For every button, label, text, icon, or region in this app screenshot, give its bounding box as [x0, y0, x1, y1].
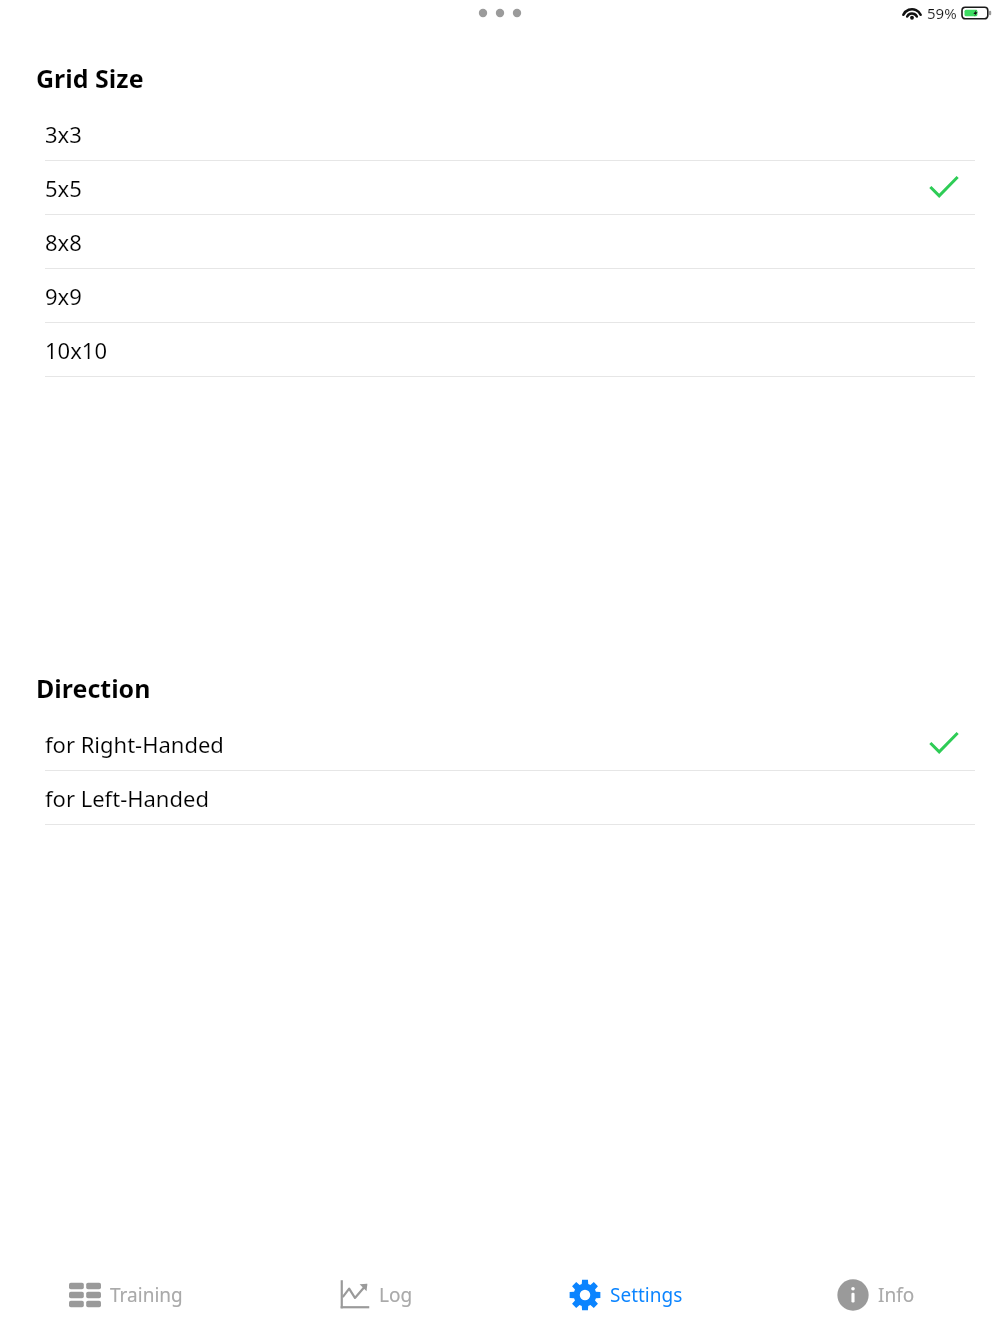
button[interactable]: 9x9	[0, 269, 1000, 323]
staticText: Direction	[36, 671, 151, 705]
staticText: 59%	[927, 3, 957, 23]
staticText: Grid Size	[36, 61, 144, 95]
staticText: Settings	[610, 1282, 683, 1308]
staticText: 10x10	[45, 335, 107, 365]
staticText: 3x3	[45, 119, 82, 149]
staticText: 9x9	[45, 281, 82, 311]
button[interactable]: 8x8	[0, 215, 1000, 269]
button[interactable]: Log	[250, 1255, 500, 1334]
staticText: for Left-Handed	[45, 783, 209, 813]
staticText: for Right-Handed	[45, 729, 224, 759]
staticText: 5x5	[45, 173, 82, 203]
button[interactable]: 3x3	[0, 107, 1000, 161]
button[interactable]: Info	[750, 1255, 1000, 1334]
button[interactable]: for Left-Handed	[0, 771, 1000, 825]
staticText: Info	[878, 1282, 915, 1308]
button[interactable]: 5x5	[0, 161, 1000, 215]
button[interactable]: 10x10	[0, 323, 1000, 377]
staticText: Log	[379, 1282, 413, 1308]
staticText: 8x8	[45, 227, 82, 257]
button[interactable]: Training	[0, 1255, 250, 1334]
staticText: Training	[110, 1282, 183, 1308]
button[interactable]: for Right-Handed	[0, 717, 1000, 771]
button[interactable]: Settings	[500, 1255, 750, 1334]
